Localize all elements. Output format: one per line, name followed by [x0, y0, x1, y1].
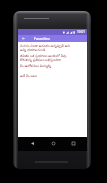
- staticText: మీ ఆలోచనలు మిమ్మల్ని: [20, 63, 52, 68]
- button[interactable]: మనసు నిండా ఆనందం ఉన్నప్పుడే అని అన్ని భయ…: [20, 43, 86, 53]
- button[interactable]: Back: [26, 137, 38, 150]
- button[interactable]: అదే మీ బలం: [20, 73, 86, 78]
- button[interactable]: మీ ఆలోచనలు మిమ్మల్ని: [20, 63, 86, 68]
- staticText: అదే మీ బలం: [20, 73, 38, 78]
- button[interactable]: జీవితం ఒక ప్రయాణం అందులో నీవు కోరుకున్న …: [20, 53, 86, 63]
- staticText: 10:01: [77, 30, 86, 34]
- button[interactable]: Home: [47, 137, 59, 150]
- staticText: మనసు నిండా ఆనందం ఉన్నప్పుడే అని అన్ని భయ…: [20, 43, 70, 53]
- staticText: జీవితం ఒక ప్రయాణం అందులో నీవు కోరుకున్న …: [20, 53, 67, 63]
- button[interactable]: Back: [18, 35, 28, 42]
- button[interactable]: Recent apps: [67, 137, 79, 150]
- staticText: Favorites: [34, 36, 50, 41]
